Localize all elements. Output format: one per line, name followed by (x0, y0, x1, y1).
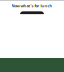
staticText: Now what's for lunch (11, 3, 52, 8)
